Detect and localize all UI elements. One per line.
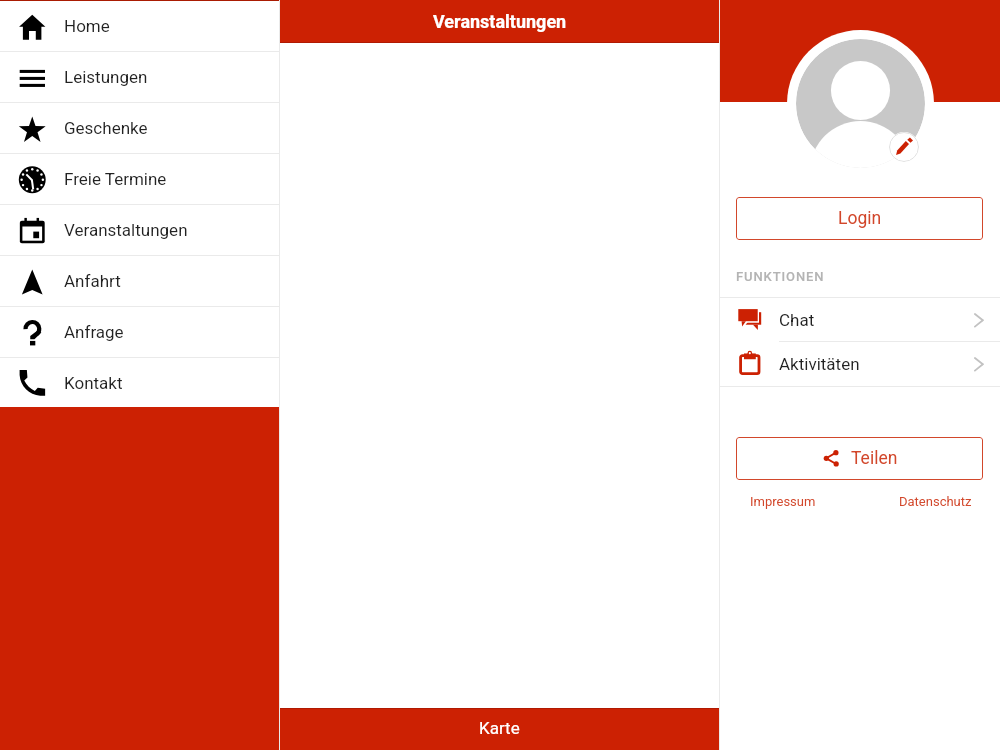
staticText: Leistungen xyxy=(64,67,148,87)
staticText: Freie Termine xyxy=(64,169,167,189)
staticText: Veranstaltungen xyxy=(64,220,188,240)
staticText: Anfahrt xyxy=(64,271,121,291)
button[interactable]: Impressum xyxy=(750,494,816,509)
button[interactable]: Anfrage xyxy=(0,307,279,358)
button[interactable]: Veranstaltungen xyxy=(0,205,279,256)
button[interactable]: Aktivitäten xyxy=(720,342,1000,386)
staticText: Veranstaltungen xyxy=(433,11,567,32)
button[interactable]: Freie Termine xyxy=(0,154,279,205)
button[interactable]: Login xyxy=(736,197,983,240)
button[interactable]: Edit profile xyxy=(889,132,919,162)
staticText: Geschenke xyxy=(64,118,148,138)
button[interactable]: Teilen xyxy=(736,437,983,480)
staticText: Teilen xyxy=(851,448,898,469)
button[interactable]: Chat xyxy=(720,298,1000,342)
button[interactable]: Geschenke xyxy=(0,103,279,154)
staticText: Login xyxy=(838,208,882,229)
staticText: Chat xyxy=(779,310,815,330)
button[interactable]: Home xyxy=(0,1,279,52)
staticText: Home xyxy=(64,16,110,36)
staticText: Anfrage xyxy=(64,322,124,342)
button[interactable]: Profile photo xyxy=(787,30,934,177)
button[interactable]: Datenschutz xyxy=(899,494,972,509)
button[interactable]: Leistungen xyxy=(0,52,279,103)
staticText: Kontakt xyxy=(64,373,123,393)
button[interactable]: Karte xyxy=(280,708,719,750)
button[interactable]: Veranstaltungen xyxy=(280,0,719,43)
staticText: Aktivitäten xyxy=(779,354,860,374)
button[interactable]: Kontakt xyxy=(0,358,279,407)
button[interactable]: Anfahrt xyxy=(0,256,279,307)
staticText: FUNKTIONEN xyxy=(736,269,825,284)
staticText: Karte xyxy=(479,718,520,738)
